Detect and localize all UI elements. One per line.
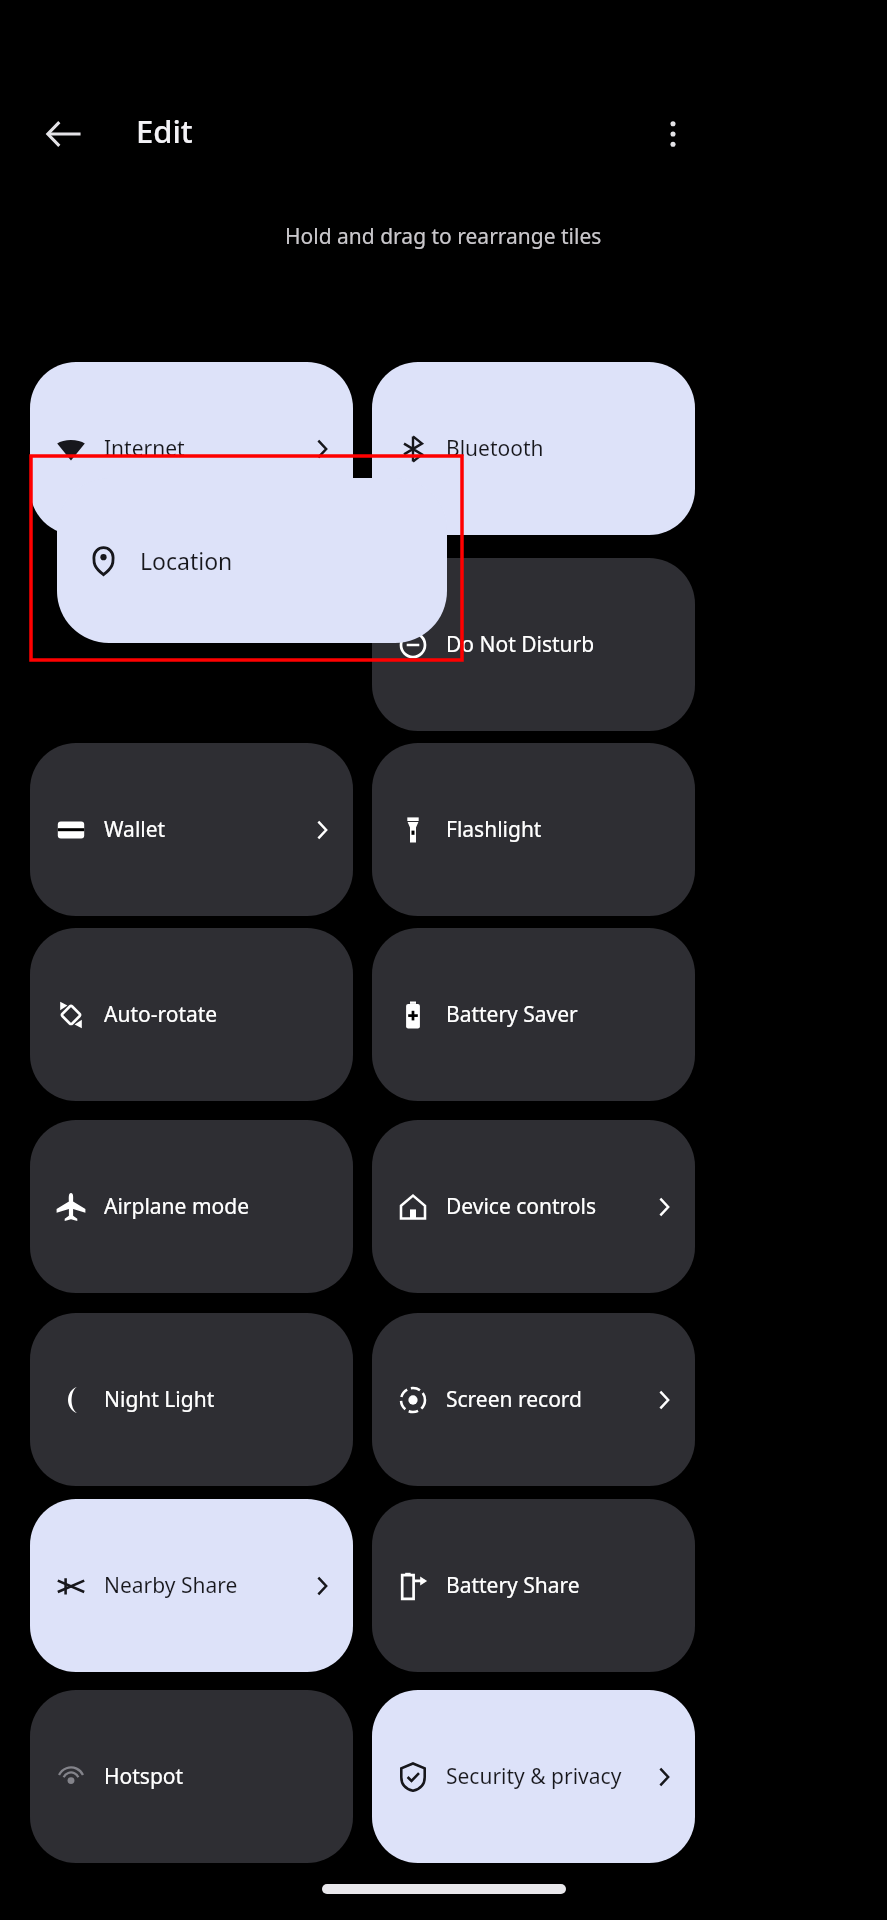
button[interactable]: Battery Share	[372, 1499, 695, 1672]
button[interactable]: Do Not Disturb	[372, 558, 695, 731]
button[interactable]: Security & privacy	[372, 1690, 695, 1863]
button[interactable]: Screen record	[372, 1313, 695, 1486]
staticText: Location	[140, 545, 426, 576]
button[interactable]: Location	[57, 478, 447, 643]
staticText: Bluetooth	[446, 434, 677, 463]
button[interactable]: More options	[643, 104, 703, 164]
staticText: Do Not Disturb	[446, 630, 677, 659]
staticText: Wallet	[104, 815, 302, 844]
staticText: Security & privacy	[446, 1762, 644, 1791]
staticText: Edit	[136, 110, 193, 152]
staticText: Flashlight	[446, 815, 677, 844]
button[interactable]: Airplane mode	[30, 1120, 353, 1293]
button[interactable]: Nearby Share	[30, 1499, 353, 1672]
button[interactable]: Night Light	[30, 1313, 353, 1486]
staticText: Device controls	[446, 1192, 644, 1221]
button[interactable]: Battery Saver	[372, 928, 695, 1101]
button[interactable]: Back	[34, 104, 94, 164]
button[interactable]: Bluetooth	[372, 362, 695, 535]
staticText: Nearby Share	[104, 1571, 302, 1600]
staticText: Screen record	[446, 1385, 644, 1414]
button[interactable]: Flashlight	[372, 743, 695, 916]
staticText: Internet	[104, 434, 302, 463]
staticText: Hold and drag to rearrange tiles	[285, 222, 602, 251]
staticText: Night Light	[104, 1385, 335, 1414]
staticText: Auto-rotate	[104, 1000, 335, 1029]
staticText: Airplane mode	[104, 1192, 335, 1221]
button[interactable]: Wallet	[30, 743, 353, 916]
staticText: Battery Share	[446, 1571, 677, 1600]
button[interactable]: Device controls	[372, 1120, 695, 1293]
staticText: Battery Saver	[446, 1000, 677, 1029]
staticText: Hotspot	[104, 1762, 335, 1791]
button[interactable]: Auto-rotate	[30, 928, 353, 1101]
button[interactable]: Hotspot	[30, 1690, 353, 1863]
button[interactable]: Internet	[30, 362, 353, 535]
